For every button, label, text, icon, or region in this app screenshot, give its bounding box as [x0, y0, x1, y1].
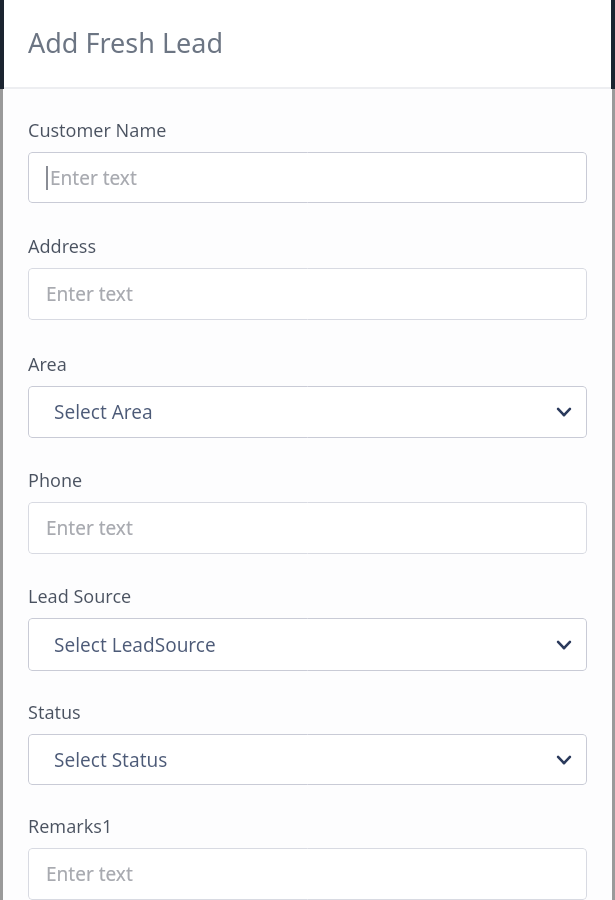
staticText: Phone	[28, 468, 83, 493]
staticText: Enter text	[46, 861, 133, 887]
button[interactable]: Enter text	[28, 502, 587, 554]
staticText: Area	[28, 352, 67, 377]
button[interactable]: Enter text	[28, 848, 587, 900]
button[interactable]: Select LeadSource	[28, 618, 587, 671]
staticText: Add Fresh Lead	[28, 24, 224, 61]
staticText: Remarks1	[28, 814, 113, 839]
staticText: Enter text	[46, 515, 133, 541]
staticText: Enter text	[46, 281, 133, 307]
staticText: Select LeadSource	[54, 632, 216, 658]
staticText: Lead Source	[28, 584, 132, 609]
staticText: Address	[28, 234, 97, 259]
staticText: Customer Name	[28, 118, 167, 143]
staticText: Status	[28, 700, 81, 725]
button[interactable]: Select Status	[28, 734, 587, 785]
staticText: Select Status	[54, 747, 168, 773]
staticText: Select Area	[54, 399, 153, 425]
button[interactable]: Enter text	[28, 152, 587, 203]
staticText: Enter text	[50, 165, 137, 191]
button[interactable]: Select Area	[28, 386, 587, 438]
button[interactable]: Enter text	[28, 268, 587, 320]
